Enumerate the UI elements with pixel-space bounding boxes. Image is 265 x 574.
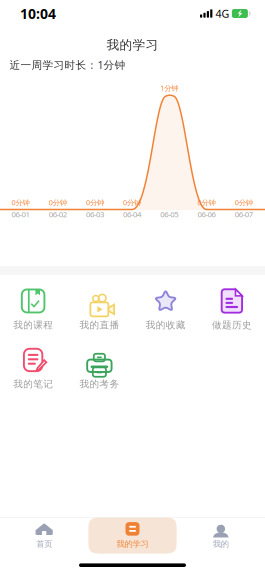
button[interactable]: 我的课程: [0, 284, 66, 336]
staticText: 我的直播: [79, 319, 119, 331]
staticText: 我的笔记: [13, 378, 53, 390]
staticText: 0分钟: [197, 197, 215, 207]
button[interactable]: 我的: [177, 518, 265, 554]
staticText: 1分钟: [160, 83, 178, 93]
button[interactable]: 做题历史: [199, 284, 265, 336]
staticText: 06-01: [11, 209, 29, 219]
staticText: 06-05: [160, 209, 178, 219]
button[interactable]: 我的直播: [66, 284, 132, 336]
staticText: 近一周学习时长：1分钟: [9, 57, 125, 72]
staticText: 我的学习: [106, 37, 158, 53]
staticText: 06-04: [123, 209, 141, 219]
staticText: 我的考务: [79, 378, 119, 390]
staticText: 4G: [215, 6, 229, 21]
staticText: 0分钟: [86, 197, 104, 207]
staticText: 0分钟: [49, 197, 67, 207]
staticText: 06-07: [235, 209, 253, 219]
staticText: 我的课程: [13, 319, 53, 331]
button[interactable]: 我的考务: [66, 343, 132, 395]
button[interactable]: 我的笔记: [0, 343, 66, 395]
staticText: 0分钟: [11, 197, 29, 207]
staticText: 我的学习: [116, 539, 148, 549]
staticText: 我的: [213, 539, 229, 549]
staticText: 首页: [36, 539, 52, 549]
staticText: 06-02: [49, 209, 67, 219]
staticText: 0分钟: [235, 197, 253, 207]
staticText: 10:04: [20, 4, 56, 23]
staticText: 0分钟: [123, 197, 141, 207]
staticText: 06-06: [197, 209, 215, 219]
button[interactable]: 我的收藏: [132, 284, 199, 336]
staticText: 做题历史: [212, 319, 252, 331]
staticText: 06-03: [86, 209, 104, 219]
staticText: 我的收藏: [146, 319, 186, 331]
button[interactable]: 我的学习: [88, 518, 177, 554]
button[interactable]: 首页: [0, 518, 88, 554]
